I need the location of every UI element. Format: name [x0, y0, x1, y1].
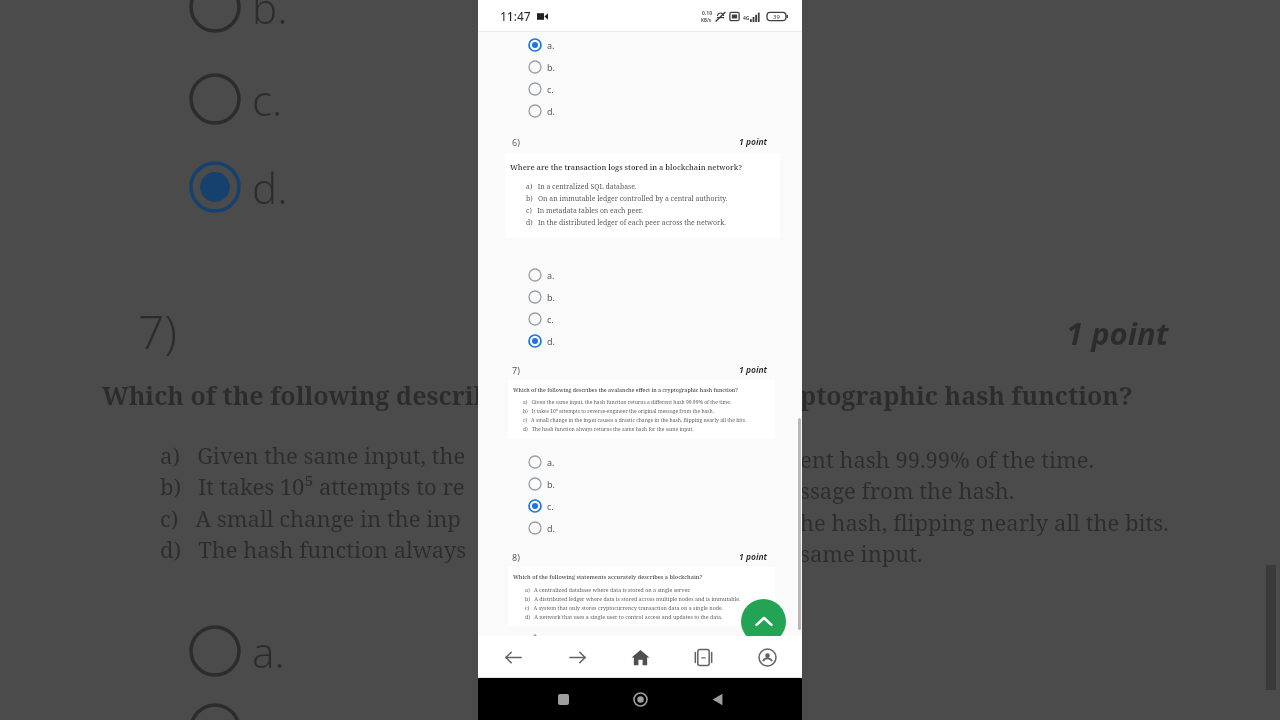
staticText: b) On an immutable ledger controlled by … [526, 194, 728, 203]
staticText: d. [252, 159, 288, 216]
staticText: b. [547, 61, 555, 73]
staticText: same input. [800, 538, 923, 568]
button[interactable]: Recents [546, 682, 580, 716]
staticText: 1 point [739, 364, 768, 376]
button[interactable]: Back [485, 636, 541, 678]
staticText: Which of the following describes the ava… [513, 386, 738, 393]
staticText: c. [547, 313, 554, 325]
staticText: c. [547, 500, 554, 512]
staticText: he hash, flipping nearly all the bits. [800, 507, 1169, 537]
staticText: b) It takes 10⁵ attempts to re [160, 471, 465, 501]
button[interactable]: a. [528, 451, 555, 473]
staticText: c) In metadata tables on each peer. [526, 206, 643, 215]
staticText: d. [547, 522, 555, 534]
staticText: 1 point [1066, 312, 1169, 354]
button[interactable]: Back [700, 682, 734, 716]
staticText: 6) [512, 136, 520, 148]
staticText: a) Given the same input, the [160, 440, 466, 470]
button[interactable]: b. [528, 56, 555, 78]
button[interactable]: Home [623, 682, 657, 716]
button[interactable]: c. [528, 308, 554, 330]
button[interactable]: a. [528, 34, 555, 56]
staticText: a. [547, 39, 555, 51]
staticText: c. [252, 71, 283, 128]
staticText: 1 point [739, 136, 768, 148]
button[interactable]: d. [528, 100, 555, 122]
staticText: b) It takes 10⁵ attempts to reverse-engi… [523, 408, 715, 415]
button[interactable]: Scroll to top [741, 599, 786, 644]
button[interactable]: d. [528, 330, 555, 352]
staticText: 0.10 [702, 10, 712, 17]
staticText: a) Given the same input, the hash functi… [523, 399, 732, 406]
staticText: KB/s [701, 17, 712, 23]
staticText: d. [547, 335, 555, 347]
staticText: 7) [512, 364, 520, 376]
staticText: d) The hash function always [160, 534, 467, 564]
staticText: b. [252, 0, 288, 36]
button[interactable]: d. [528, 517, 555, 539]
staticText: d) The hash function always returns the … [523, 426, 694, 433]
staticText: 1 point [739, 551, 768, 563]
staticText: Which of the following statements accura… [513, 573, 703, 580]
staticText: b. [547, 478, 555, 490]
staticText: 4G [743, 15, 750, 22]
staticText: 39 [773, 13, 780, 21]
staticText: b. [547, 291, 555, 303]
staticText: a. [252, 623, 285, 680]
staticText: ent hash 99.99% of the time. [800, 444, 1095, 474]
staticText: b) A distributed ledger where data is st… [525, 595, 741, 602]
button[interactable]: Home [612, 636, 668, 678]
staticText: d) In the distributed ledger of each pee… [526, 218, 726, 227]
button[interactable]: b. [528, 473, 555, 495]
staticText: 11:47 [500, 8, 531, 24]
staticText: c) A small change in the inp [160, 503, 461, 533]
staticText: d) A network that uses a single user to … [525, 613, 723, 620]
button[interactable]: a. [528, 264, 555, 286]
staticText: Which of the following describes [102, 378, 517, 412]
staticText: c. [547, 83, 554, 95]
staticText: ptographic hash function? [800, 378, 1133, 412]
staticText: c) A small change in the input causes a … [523, 417, 747, 424]
staticText: c) A system that only stores cryptocurre… [525, 604, 724, 611]
staticText: ssage from the hash. [800, 475, 1015, 505]
button[interactable]: c. [528, 495, 554, 517]
staticText: a) In a centralized SQL database. [526, 182, 637, 191]
staticText: d. [547, 105, 555, 117]
staticText: 7) [138, 300, 178, 363]
staticText: Where are the transaction logs stored in… [510, 162, 743, 172]
button[interactable]: Forward [549, 636, 605, 678]
staticText: 8) [512, 551, 520, 563]
button[interactable]: c. [528, 78, 554, 100]
button[interactable]: Tabs [675, 636, 731, 678]
staticText: a) A centralized database where data is … [525, 586, 691, 593]
button[interactable]: b. [528, 286, 555, 308]
staticText: a. [547, 456, 555, 468]
button[interactable]: Profile [739, 636, 795, 678]
staticText: a. [547, 269, 555, 281]
